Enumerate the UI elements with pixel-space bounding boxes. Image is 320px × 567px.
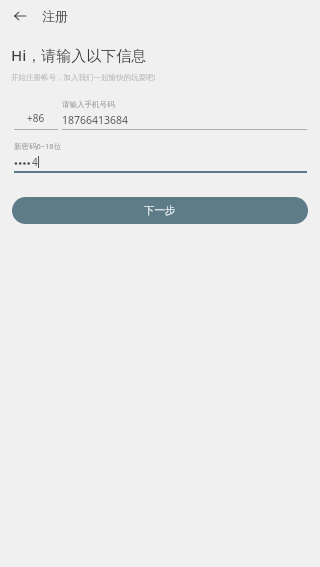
staticText: 下一步 <box>144 204 176 217</box>
staticText: 开始注册帐号，加入我们一起愉快的玩耍吧! <box>11 72 156 82</box>
staticText: Hi，请输入以下信息 <box>11 45 147 65</box>
staticText: 新密码6~18位 <box>14 141 62 151</box>
staticText: 注册 <box>42 8 68 24</box>
staticText: 请输入手机号码 <box>62 100 115 109</box>
button[interactable]: 下一步 <box>12 197 308 224</box>
button[interactable]: 请输入手机号码 <box>62 100 307 130</box>
button[interactable]: Back <box>6 2 34 30</box>
staticText: +86 <box>27 111 45 125</box>
staticText: 18766413684 <box>62 113 129 127</box>
staticText: 4 <box>32 155 38 169</box>
button[interactable]: +86 <box>14 109 58 130</box>
button[interactable]: 新密码6~18位 <box>14 141 307 173</box>
